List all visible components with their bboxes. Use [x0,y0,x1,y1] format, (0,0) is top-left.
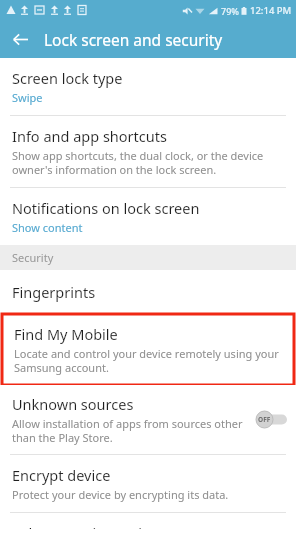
staticText: Lock screen and security [44,29,223,50]
staticText: Locate and control your device remotely … [14,346,285,375]
button[interactable]: Unknown sources [0,385,296,454]
button[interactable]: Unknown sources, off [256,411,287,428]
staticText: Info and app shortcuts [12,126,167,146]
staticText: Screen lock type [12,68,123,88]
staticText: Swipe [12,90,43,105]
staticText: Find My Mobile [14,324,118,344]
staticText: Allow installation of apps from sources … [12,416,250,445]
staticText: Fingerprints [12,282,96,302]
button[interactable]: Encrypt device [0,455,296,512]
staticText: OFF [258,415,271,424]
staticText: Encrypt device [12,465,111,485]
staticText: 12:14 PM [250,4,292,17]
button[interactable]: Info and app shortcuts [0,116,296,187]
staticText: Other security settings [12,523,167,529]
staticText: Security [12,250,54,265]
staticText: Show app shortcuts, the dual clock, or t… [12,148,287,177]
staticText: Notifications on lock screen [12,198,200,218]
staticText: Show content [12,220,83,235]
staticText: Protect your device by encrypting its da… [12,487,229,502]
button[interactable]: Back [5,24,35,54]
button[interactable]: Other security settings [0,513,296,539]
button[interactable]: Fingerprints [0,270,296,314]
staticText: 79% [221,5,239,17]
button[interactable]: Find My Mobile [2,314,294,385]
button[interactable]: Notifications on lock screen [0,188,296,245]
button[interactable]: Screen lock type [0,58,296,115]
staticText: Unknown sources [12,394,134,414]
